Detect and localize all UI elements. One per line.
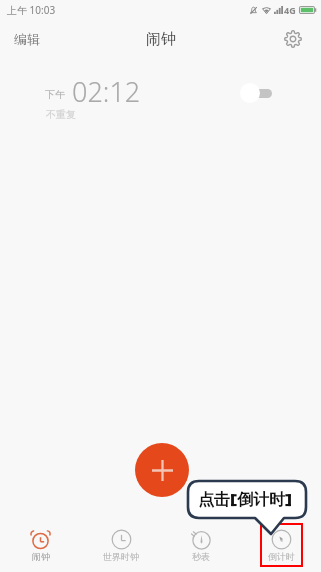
button[interactable]: 下午: [0, 58, 321, 120]
staticText: 闹钟: [32, 551, 50, 562]
staticText: 不重复: [46, 108, 76, 121]
staticText: 下午: [45, 88, 65, 101]
staticText: 闹钟: [146, 30, 176, 49]
staticText: 4G: [284, 4, 296, 16]
button[interactable]: Add alarm: [135, 443, 189, 497]
staticText: 上午 10:03: [7, 3, 56, 17]
button[interactable]: 秒表: [161, 520, 241, 572]
button[interactable]: 世界时钟: [81, 520, 161, 572]
staticText: 秒表: [192, 551, 210, 562]
staticText: 02:12: [72, 73, 141, 110]
staticText: 倒计时: [268, 551, 295, 562]
button[interactable]: 倒计时: [241, 520, 321, 572]
button[interactable]: Settings: [272, 21, 321, 57]
staticText: 编辑: [14, 31, 40, 47]
button[interactable]: 闹钟: [0, 520, 81, 572]
staticText: 倒计时: [237, 490, 285, 510]
staticText: 世界时钟: [103, 551, 139, 562]
button[interactable]: Toggle alarm: [236, 82, 278, 104]
staticText: 点击: [198, 490, 230, 510]
button[interactable]: 编辑: [0, 22, 54, 56]
